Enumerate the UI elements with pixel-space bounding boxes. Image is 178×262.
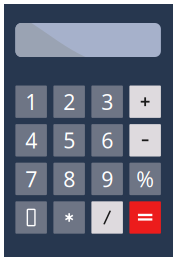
staticText: % xyxy=(136,165,154,193)
button[interactable]: 7 xyxy=(15,163,47,195)
button[interactable]: 8 xyxy=(53,163,85,195)
button[interactable]: Plus xyxy=(129,85,161,118)
button[interactable]: 4 xyxy=(15,124,47,156)
staticText: 9 xyxy=(101,165,113,193)
button[interactable]: Minus xyxy=(129,124,161,156)
staticText: 7 xyxy=(25,165,37,193)
staticText: 6 xyxy=(101,126,113,154)
staticText: 2 xyxy=(63,87,75,116)
button[interactable]: 2 xyxy=(53,85,85,118)
button[interactable]: Multiply xyxy=(53,201,85,234)
staticText: 3 xyxy=(101,87,113,116)
staticText: 1 xyxy=(25,87,37,116)
button[interactable]: 5 xyxy=(53,124,85,156)
staticText: 8 xyxy=(63,165,75,193)
button[interactable]: Divide xyxy=(91,201,123,234)
staticText: 4 xyxy=(25,126,37,154)
button[interactable]: 3 xyxy=(91,85,123,118)
button[interactable]: Equals xyxy=(129,201,161,234)
button[interactable]: 9 xyxy=(91,163,123,195)
staticText: 5 xyxy=(63,126,75,154)
button[interactable]: 6 xyxy=(91,124,123,156)
button[interactable]: 1 xyxy=(15,85,47,118)
button[interactable]: Zero xyxy=(15,201,47,234)
button[interactable]: % xyxy=(129,163,161,195)
